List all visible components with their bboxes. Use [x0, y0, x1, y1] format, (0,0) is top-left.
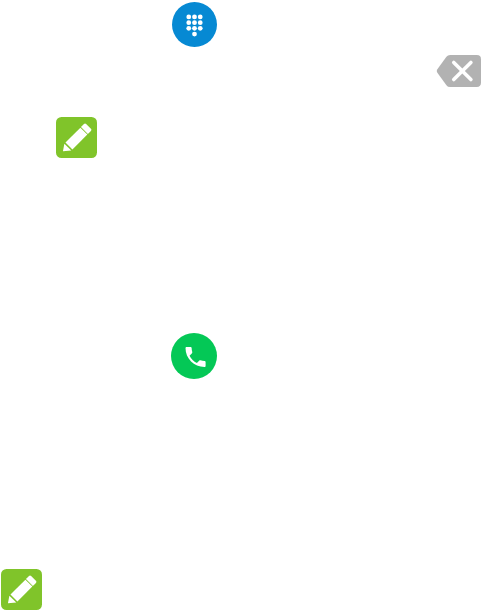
button[interactable]: Edit — [1, 569, 42, 610]
button[interactable]: Backspace — [436, 55, 481, 87]
button[interactable]: Edit — [56, 117, 97, 158]
button[interactable]: Dialpad — [172, 2, 217, 47]
button[interactable]: Call — [171, 333, 217, 379]
